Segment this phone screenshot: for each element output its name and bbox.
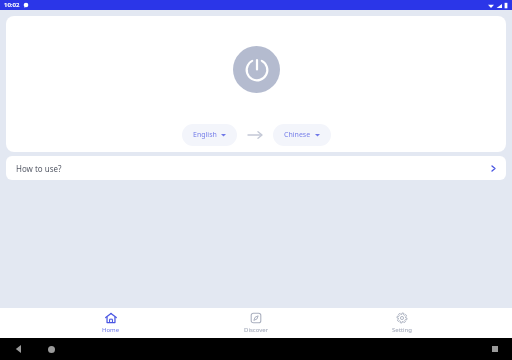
button[interactable]: How to use?: [6, 156, 506, 180]
button[interactable]: Chinese: [273, 124, 331, 146]
staticText: 10:02: [4, 1, 20, 9]
button[interactable]: Home: [76, 308, 146, 338]
staticText: Chinese: [284, 130, 311, 140]
staticText: Home: [102, 326, 120, 334]
staticText: How to use?: [16, 163, 62, 174]
staticText: English: [193, 130, 217, 140]
button[interactable]: English: [182, 124, 237, 146]
button[interactable]: Discover: [221, 308, 291, 338]
staticText: Setting: [392, 326, 412, 334]
staticText: Discover: [244, 326, 269, 334]
button[interactable]: Setting: [367, 308, 437, 338]
button[interactable]: Power: [233, 46, 280, 93]
